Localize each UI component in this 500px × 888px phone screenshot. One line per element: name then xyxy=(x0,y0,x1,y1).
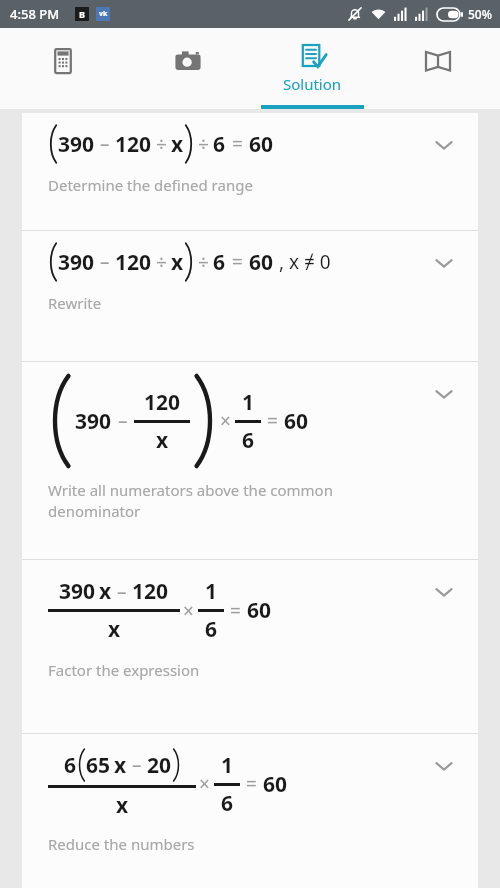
staticText: 60 xyxy=(263,770,288,799)
staticText: ÷ xyxy=(198,249,209,275)
staticText: = xyxy=(267,408,278,434)
staticText: × xyxy=(183,598,194,624)
staticText: 60 xyxy=(247,596,272,625)
staticText: = xyxy=(246,771,257,797)
staticText: 6 xyxy=(221,789,234,818)
staticText: 60 xyxy=(284,407,309,436)
button[interactable]: Expand step xyxy=(434,582,454,602)
staticText: 60 xyxy=(249,248,274,277)
staticText: , x ≠ 0 xyxy=(279,249,331,275)
staticText: ÷ xyxy=(198,131,209,157)
staticText: 65 xyxy=(86,751,111,780)
staticText: x xyxy=(171,248,184,277)
button[interactable]: Solution xyxy=(250,28,375,109)
button[interactable]: 390 xyxy=(22,560,478,733)
staticText: 4:58 PM xyxy=(10,5,60,23)
staticText: = xyxy=(232,131,243,157)
staticText: Rewrite xyxy=(48,293,102,313)
staticText: Write all numerators above the common de… xyxy=(48,480,333,522)
staticText: – xyxy=(118,408,128,434)
staticText: x xyxy=(108,615,121,644)
staticText: 6 xyxy=(205,615,218,644)
staticText: 50% xyxy=(468,6,492,22)
staticText: x xyxy=(99,577,112,606)
staticText: vk xyxy=(99,9,108,19)
button[interactable]: Expand step xyxy=(434,135,454,155)
staticText: x xyxy=(171,130,184,159)
staticText: – xyxy=(117,579,127,605)
staticText: – xyxy=(132,752,142,778)
staticText: Determine the defined range xyxy=(48,175,253,195)
staticText: 390 xyxy=(58,130,95,159)
staticText: x xyxy=(114,751,127,780)
staticText: 390 xyxy=(59,577,96,606)
staticText: = xyxy=(232,249,243,275)
staticText: B xyxy=(79,8,85,20)
staticText: 120 xyxy=(144,388,181,417)
staticText: x xyxy=(116,791,129,820)
staticText: x xyxy=(156,426,169,455)
button[interactable]: Expand step xyxy=(434,384,454,404)
staticText: 390 xyxy=(58,248,95,277)
staticText: 60 xyxy=(249,130,274,159)
button[interactable]: 390 xyxy=(22,113,478,230)
button[interactable]: Expand step xyxy=(434,756,454,776)
staticText: 20 xyxy=(147,751,172,780)
staticText: 1 xyxy=(221,751,234,780)
staticText: 6 xyxy=(242,426,255,455)
staticText: – xyxy=(100,131,110,157)
staticText: 1 xyxy=(205,577,218,606)
staticText: 6 xyxy=(64,751,77,780)
staticText: 6 xyxy=(213,130,226,159)
button[interactable]: 390 xyxy=(22,362,478,559)
staticText: Factor the expression xyxy=(48,660,200,680)
button[interactable]: 390 xyxy=(22,231,478,361)
staticText: 390 xyxy=(75,407,112,436)
staticText: × xyxy=(220,408,231,434)
button[interactable]: Camera xyxy=(125,28,250,109)
button[interactable]: Book xyxy=(375,28,500,109)
staticText: 120 xyxy=(132,577,169,606)
staticText: 1 xyxy=(242,388,255,417)
staticText: ÷ xyxy=(156,249,167,275)
button[interactable]: Expand step xyxy=(434,253,454,273)
staticText: ÷ xyxy=(156,131,167,157)
staticText: = xyxy=(230,598,241,624)
staticText: 120 xyxy=(115,248,152,277)
staticText: × xyxy=(199,771,210,797)
staticText: Solution xyxy=(283,74,342,94)
staticText: – xyxy=(100,249,110,275)
button[interactable]: Calculator xyxy=(0,28,125,109)
staticText: 6 xyxy=(213,248,226,277)
button[interactable]: 6 xyxy=(22,734,478,888)
staticText: Reduce the numbers xyxy=(48,834,195,854)
staticText: 120 xyxy=(115,130,152,159)
